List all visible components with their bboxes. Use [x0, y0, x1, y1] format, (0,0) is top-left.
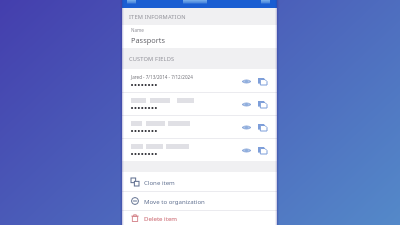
staticText: ITEM INFORMATION: [129, 13, 186, 21]
button[interactable]: Clone item: [122, 172, 277, 191]
staticText: CUSTOM FIELDS: [129, 55, 175, 63]
button[interactable]: Delete item: [122, 210, 277, 225]
button[interactable]: Toggle visibility: [238, 71, 254, 91]
staticText: Name: [131, 27, 144, 33]
staticText: Passports: [131, 35, 165, 45]
button[interactable]: Copy value: [254, 71, 270, 91]
staticText: Move to organization: [144, 197, 205, 205]
staticText: Clone item: [144, 178, 175, 186]
staticText: Jared - 7/13/2014 - 7/12/2024: [131, 74, 193, 80]
staticText: Delete item: [144, 214, 178, 222]
button[interactable]: Toggle visibility: [238, 94, 254, 114]
button[interactable]: Toggle visibility: [238, 140, 254, 160]
button[interactable]: Copy value: [254, 140, 270, 160]
button[interactable]: Copy value: [254, 117, 270, 137]
button[interactable]: Move to organization: [122, 191, 277, 210]
button[interactable]: Copy value: [254, 94, 270, 114]
button[interactable]: Toggle visibility: [238, 117, 254, 137]
